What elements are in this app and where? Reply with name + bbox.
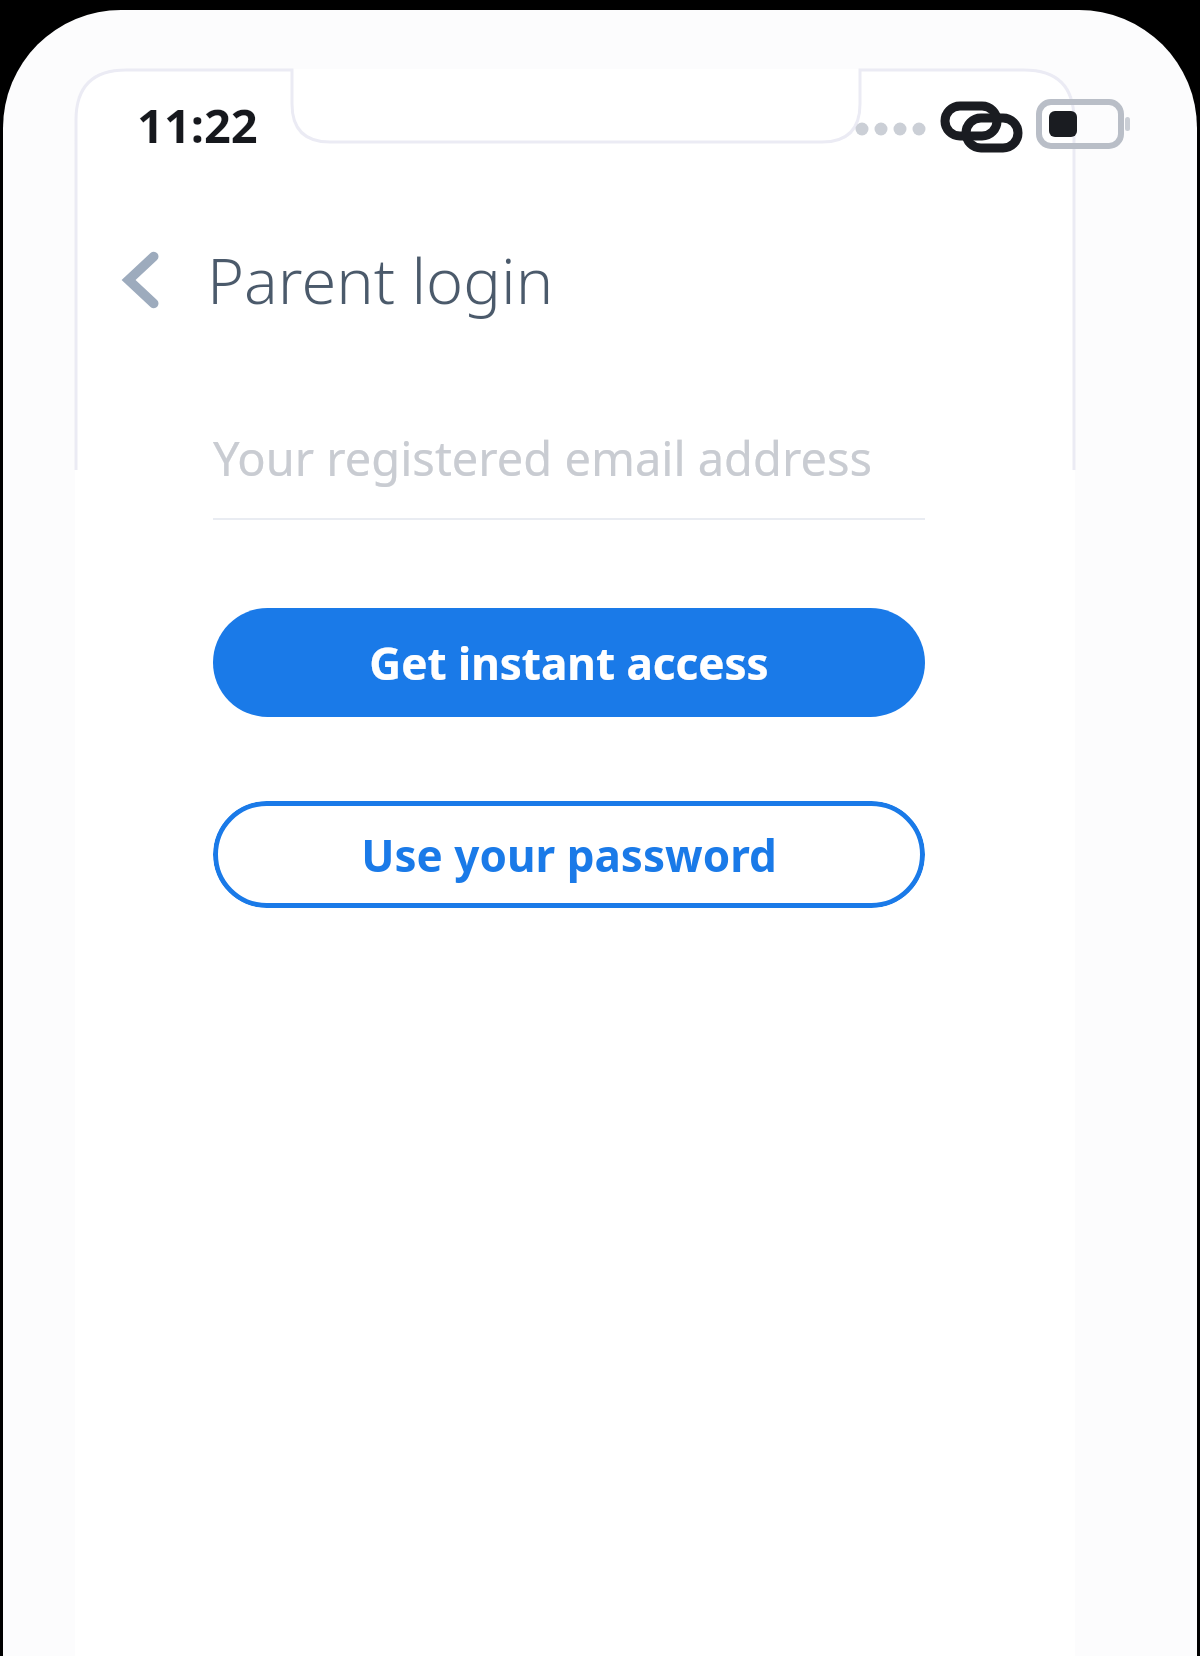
staticText: Your registered email address: [213, 426, 872, 490]
staticText: Use your password: [361, 825, 777, 885]
button[interactable]: Get instant access: [213, 608, 925, 717]
staticText: 11:22: [137, 93, 258, 157]
staticText: Parent login: [207, 237, 554, 323]
staticText: Get instant access: [369, 633, 769, 693]
button[interactable]: Use your password: [213, 801, 925, 908]
button[interactable]: Your registered email address: [213, 426, 925, 520]
button[interactable]: Back: [100, 238, 184, 322]
